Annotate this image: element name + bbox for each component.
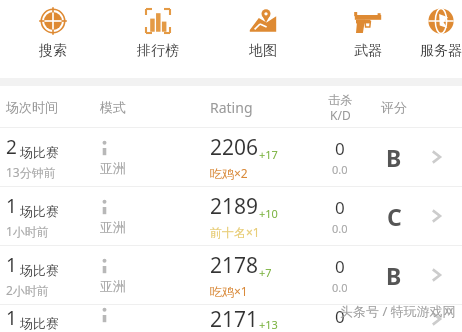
staticText: 0.0 (332, 280, 348, 295)
staticText: 0 (335, 305, 345, 328)
other: 服务器 (426, 6, 456, 36)
staticText: 0 (335, 196, 345, 219)
button[interactable]: 排行榜 (105, 0, 210, 60)
staticText: 1小时前 (6, 223, 49, 239)
staticText: 2206 (210, 133, 259, 162)
staticText: 击杀 (328, 92, 352, 107)
staticText: 武器 (354, 42, 382, 60)
staticText: 地图 (249, 42, 277, 60)
staticText: 场比赛 (20, 203, 59, 219)
staticText: 0.0 (332, 162, 348, 177)
staticText: +7 (259, 265, 272, 280)
staticText: 1 (6, 305, 17, 331)
staticText: 场次时间 (6, 99, 58, 115)
staticText: 场比赛 (20, 144, 59, 160)
staticText: 2189 (210, 192, 259, 221)
staticText: C (387, 201, 402, 232)
button[interactable]: 1 (0, 187, 462, 245)
staticText: K/D (330, 107, 351, 123)
staticText: B (386, 260, 402, 291)
staticText: 排行榜 (137, 42, 179, 60)
button[interactable]: 搜索 (0, 0, 105, 60)
staticText: 前十名×1 (210, 224, 260, 240)
button[interactable]: 服务器 (420, 0, 462, 60)
staticText: 1 (6, 193, 17, 219)
staticText: 场比赛 (20, 262, 59, 278)
button[interactable]: 武器 (315, 0, 420, 60)
staticText: +10 (259, 206, 278, 221)
staticText: 吃鸡×1 (210, 283, 248, 299)
staticText: +17 (259, 147, 278, 162)
button[interactable]: 地图 (210, 0, 315, 60)
staticText: 亚洲 (100, 278, 126, 294)
staticText: 13分钟前 (6, 164, 56, 180)
staticText: 0 (335, 137, 345, 160)
staticText: 亚洲 (100, 160, 126, 176)
staticText: 场比赛 (20, 315, 59, 331)
staticText: 吃鸡×2 (210, 165, 248, 181)
staticText: 2178 (210, 251, 259, 280)
staticText: +13 (259, 317, 278, 332)
staticText: 2171 (210, 305, 259, 332)
staticText: B (386, 142, 402, 173)
staticText: 2 (6, 134, 17, 160)
button[interactable]: 1 (0, 246, 462, 304)
staticText: 0.0 (332, 221, 348, 236)
staticText: 1 (6, 252, 17, 278)
staticText: Rating (210, 98, 253, 117)
staticText: 服务器 (420, 42, 462, 60)
staticText: 评分 (381, 99, 407, 115)
staticText: 亚洲 (100, 219, 126, 235)
staticText: 2小时前 (6, 282, 49, 298)
staticText: 头条号 / 特玩游戏网 (340, 302, 456, 320)
button[interactable]: 2 (0, 128, 462, 186)
staticText: 模式 (100, 99, 126, 115)
button[interactable]: 1 (0, 305, 462, 332)
staticText: 搜索 (39, 42, 67, 60)
staticText: 0 (335, 255, 345, 278)
